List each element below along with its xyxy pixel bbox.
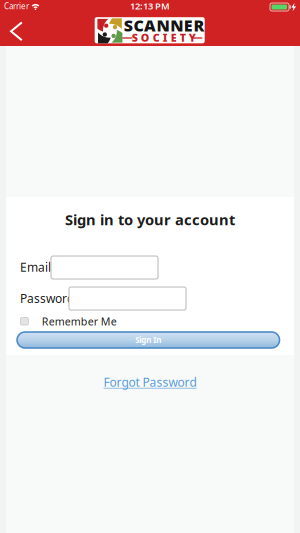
staticText: Sign in to your account xyxy=(65,210,235,229)
staticText: 12:13 PM xyxy=(130,0,170,12)
staticText: SOCIETY xyxy=(132,30,196,45)
staticText: Remember Me xyxy=(42,314,117,328)
button[interactable]: Email xyxy=(51,256,158,279)
button[interactable]: Forgot Password xyxy=(103,374,196,390)
staticText: SCANNER xyxy=(124,15,204,36)
staticText: Password xyxy=(20,290,74,306)
button[interactable]: Password xyxy=(69,287,186,310)
staticText: Forgot Password xyxy=(103,374,196,390)
button[interactable]: Back xyxy=(0,0,34,30)
button[interactable]: Remember Me xyxy=(20,314,117,328)
staticText: Email xyxy=(20,259,51,275)
staticText: Sign In xyxy=(135,335,161,345)
staticText: Carrier xyxy=(4,1,29,11)
button[interactable]: Sign In xyxy=(17,332,280,348)
